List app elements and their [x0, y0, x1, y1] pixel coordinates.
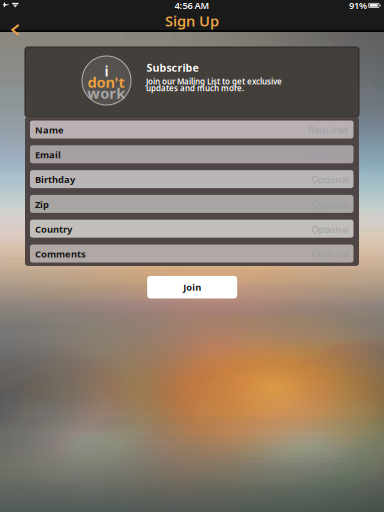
staticText: work	[87, 83, 125, 103]
staticText: Optional	[311, 198, 348, 210]
staticText: Join our Mailing List to get exclusive	[146, 76, 282, 87]
staticText: don't	[87, 72, 124, 92]
button[interactable]: Join	[147, 276, 237, 298]
button[interactable]: Zip	[30, 195, 353, 213]
button[interactable]: Email	[30, 145, 353, 163]
staticText: Required	[308, 124, 348, 136]
staticText: i	[105, 61, 109, 81]
button[interactable]: Sign Up	[165, 11, 219, 31]
staticText: Zip	[35, 198, 49, 210]
staticText: Comments	[35, 248, 86, 260]
button[interactable]: Name	[30, 120, 353, 138]
staticText: Name	[35, 124, 64, 136]
staticText: Optional	[311, 248, 348, 260]
staticText: Join	[183, 281, 201, 293]
staticText: Country	[35, 223, 72, 235]
button[interactable]: Country	[30, 220, 353, 238]
staticText: Birthday	[35, 173, 75, 186]
button[interactable]: Back	[0, 9, 28, 31]
button[interactable]: Comments	[30, 244, 353, 262]
staticText: 91%	[349, 0, 367, 12]
staticText: Optional	[311, 223, 348, 235]
button[interactable]: Birthday	[30, 170, 353, 188]
staticText: updates and much more.	[146, 83, 244, 93]
staticText: Sign Up	[165, 11, 219, 31]
staticText: Optional	[311, 173, 348, 186]
staticText: Email	[35, 148, 61, 161]
staticText: Subscribe	[146, 60, 198, 75]
staticText: 4:56 AM	[174, 0, 209, 12]
